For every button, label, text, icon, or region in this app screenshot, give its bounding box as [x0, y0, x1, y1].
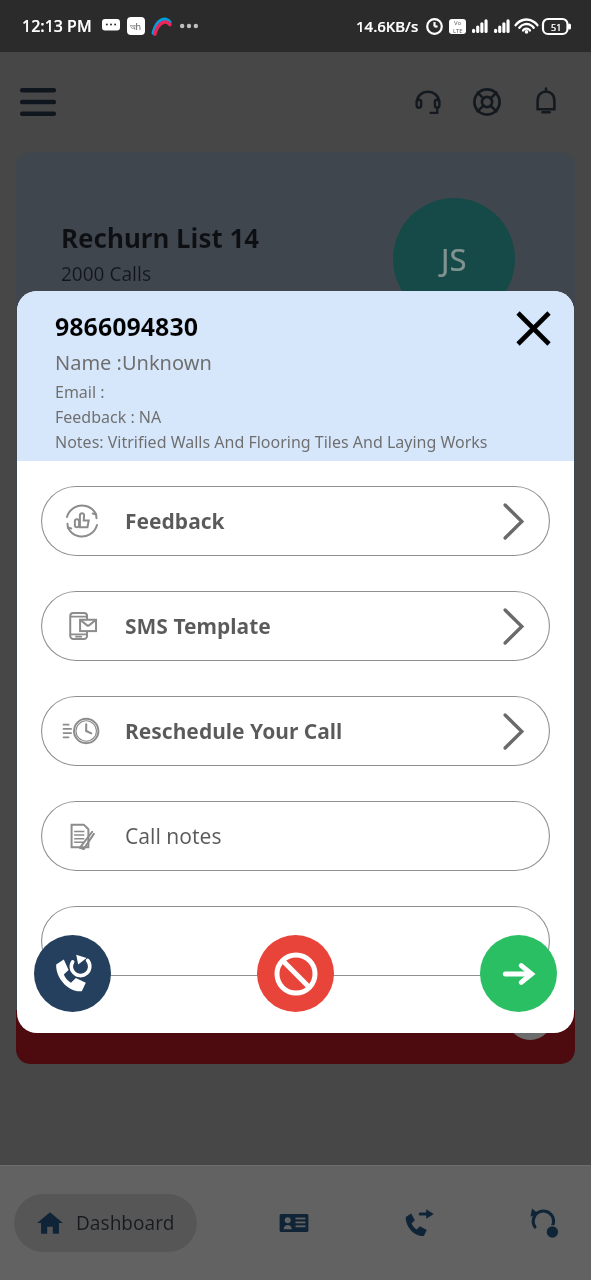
button[interactable]: Feedback — [41, 486, 550, 556]
staticText: Rechurn List 14 — [61, 220, 260, 255]
button[interactable]: Block number — [257, 935, 334, 1012]
staticText: অh — [130, 20, 142, 32]
button[interactable]: Menu — [14, 78, 62, 126]
staticText: 9866094830 — [55, 309, 199, 343]
button[interactable]: Headset support — [405, 79, 451, 125]
staticText: JS — [441, 238, 467, 280]
staticText: 51 — [551, 21, 562, 33]
staticText: LTE — [453, 27, 463, 34]
button[interactable]: Call forward — [390, 1194, 448, 1252]
button[interactable] — [41, 906, 550, 976]
staticText: 2000 Calls — [61, 261, 151, 287]
button[interactable]: Contacts — [265, 1194, 323, 1252]
staticText: Feedback : NA — [55, 406, 162, 428]
button[interactable]: Help — [464, 79, 510, 125]
staticText: Call notes — [125, 822, 222, 851]
staticText: Vo — [454, 19, 462, 27]
button[interactable]: Call back — [34, 935, 111, 1012]
staticText: 12:13 PM — [22, 15, 92, 37]
button[interactable]: Notifications — [523, 79, 569, 125]
button[interactable]: Next call — [480, 935, 557, 1012]
staticText: Notes: Vitrified Walls And Flooring Tile… — [55, 431, 488, 453]
button[interactable]: Call notes — [41, 801, 550, 871]
button[interactable]: Close — [508, 303, 558, 353]
staticText: Email : — [55, 381, 105, 403]
button[interactable]: SMS Template — [41, 591, 550, 661]
button[interactable]: Call history — [515, 1194, 573, 1252]
button[interactable]: Reschedule Your Call — [41, 696, 550, 766]
staticText: Name :Unknown — [55, 349, 212, 376]
staticText: Reschedule Your Call — [125, 717, 343, 746]
staticText: Feedback — [125, 507, 225, 536]
staticText: SMS Template — [125, 612, 271, 641]
button[interactable]: JS — [16, 152, 575, 1064]
staticText: 14.6KB/s — [356, 16, 419, 36]
staticText: Dashboard — [76, 1210, 175, 1236]
button[interactable]: Dashboard — [14, 1194, 197, 1252]
